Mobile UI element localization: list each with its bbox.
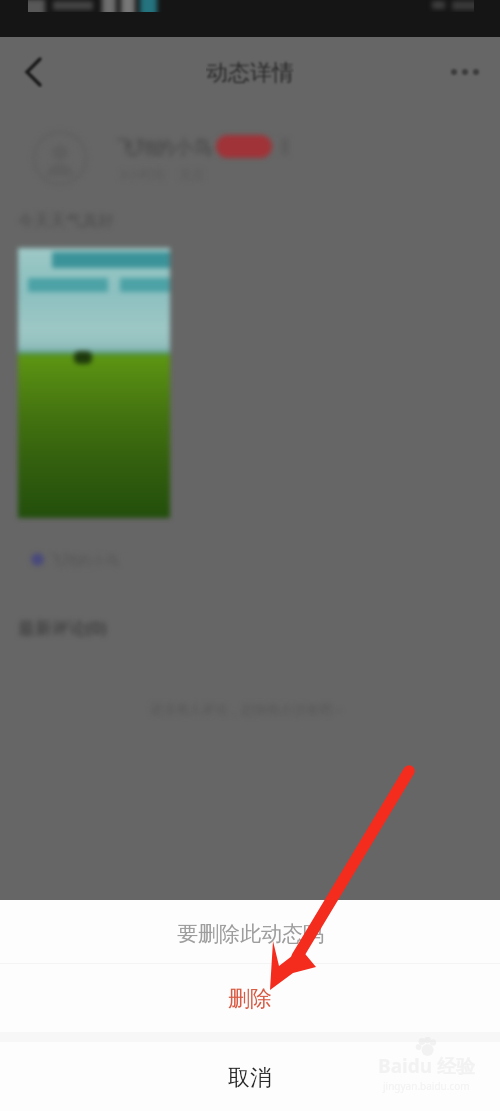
button[interactable]: 删除 <box>0 964 500 1032</box>
staticText: 最新评论(0) <box>18 616 107 639</box>
staticText: Baidu 经验 <box>378 1053 475 1079</box>
button[interactable]: Back <box>12 44 56 88</box>
staticText: 飞翔的小鸟 <box>117 136 212 160</box>
staticText: 动态详情 <box>206 59 294 87</box>
button[interactable]: 取消 <box>0 1042 500 1111</box>
button[interactable]: More options <box>441 48 489 96</box>
staticText: 删除 <box>228 985 272 1013</box>
staticText: 取消 <box>228 1064 272 1092</box>
staticText: 要删除此动态吗 <box>177 921 324 947</box>
staticText: jingyan.baidu.com <box>383 1079 470 1093</box>
